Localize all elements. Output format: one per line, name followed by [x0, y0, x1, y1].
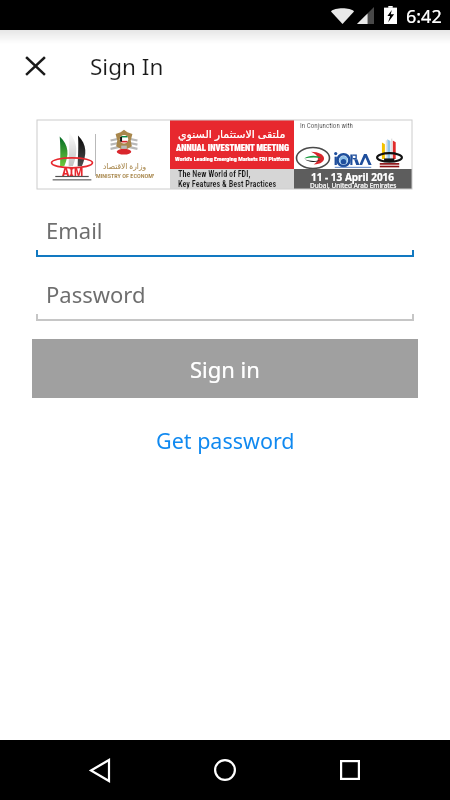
staticText: The New World of FDI,	[178, 169, 251, 179]
staticText: وزارة الاقتصاد	[103, 161, 147, 171]
staticText: Key Features & Best Practices	[178, 179, 277, 189]
button[interactable]: Home	[201, 740, 249, 800]
staticText: ANNUAL INVESTMENT MEETING	[176, 143, 289, 153]
staticText: Email	[46, 215, 103, 245]
staticText: Dubai, United Arab Emirates	[310, 181, 397, 190]
staticText: ملتقى الاستثمار السنوي	[178, 126, 286, 141]
button[interactable]: Email	[36, 248, 414, 258]
staticText: World's Leading Emerging Markets FDI Pla…	[175, 155, 290, 162]
staticText: Sign In	[90, 51, 164, 82]
button[interactable]: Get password	[142, 418, 309, 463]
staticText: Get password	[156, 426, 295, 455]
staticText: 6:42	[406, 4, 442, 29]
staticText: In Conjunction with	[300, 122, 353, 130]
button[interactable]: Recent apps	[326, 740, 374, 800]
staticText: AIM	[62, 165, 84, 179]
button[interactable]: Password	[36, 312, 414, 322]
staticText: Password	[46, 279, 146, 309]
button[interactable]: Close	[17, 48, 53, 84]
button[interactable]: Sign in	[32, 339, 418, 398]
staticText: Sign in	[190, 354, 260, 384]
staticText: MINISTRY OF ECONOMY	[96, 172, 154, 179]
staticText: 11 - 13 April 2016	[311, 170, 395, 184]
button[interactable]: Back	[76, 740, 124, 800]
